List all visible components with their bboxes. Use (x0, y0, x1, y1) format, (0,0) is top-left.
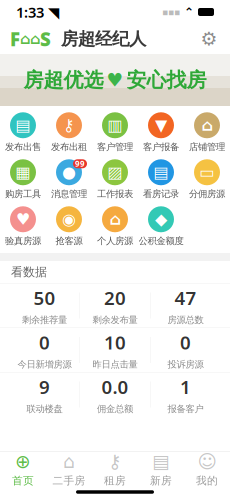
staticText: 0 (180, 330, 191, 355)
staticText: 消息管理 (51, 188, 87, 200)
staticText: 分佣房源 (189, 188, 225, 200)
button[interactable]: ◆ (138, 203, 184, 250)
staticText: ▤ (15, 116, 30, 134)
staticText: 验真房源 (5, 235, 41, 247)
staticText: 看房记录 (143, 188, 179, 200)
staticText: ⊕ (15, 451, 31, 472)
staticText: ▤ (152, 451, 170, 472)
staticText: 投诉房源 (167, 359, 203, 370)
staticText: 公积金额度 (138, 235, 183, 247)
button[interactable]: ▤ (0, 109, 46, 156)
staticText: ⌂⌂ (20, 31, 40, 47)
staticText: 抢客源 (55, 235, 82, 247)
staticText: ☺ (197, 451, 216, 472)
staticText: ▨ (107, 163, 122, 181)
staticText: 佣金总额 (97, 403, 133, 415)
staticText: 我的 (196, 474, 218, 487)
staticText: 今日新增房源 (17, 359, 71, 370)
button[interactable]: ♥ (0, 203, 46, 250)
button[interactable]: ⚷ (92, 452, 138, 486)
staticText: 剩余发布量 (92, 314, 137, 326)
button[interactable]: ⚷ (46, 109, 92, 156)
staticText: S (40, 27, 51, 51)
staticText: 报备客户 (167, 403, 203, 415)
button[interactable]: 设置 (196, 26, 222, 52)
staticText: ▭ (199, 163, 214, 181)
staticText: 二手房 (52, 474, 85, 487)
staticText: 9 (39, 374, 50, 399)
button[interactable]: ▨ (92, 156, 138, 203)
staticText: 房源总数 (167, 314, 203, 326)
button[interactable]: ▦ (0, 156, 46, 203)
staticText: 房超经纪人 (51, 28, 146, 50)
staticText: 20 (104, 285, 126, 310)
staticText: ● (62, 163, 76, 181)
staticText: 50 (33, 285, 55, 310)
staticText: 1:33 ◥ (16, 2, 59, 22)
staticText: 店铺管理 (189, 141, 225, 153)
button[interactable]: ⌂ (46, 452, 92, 486)
staticText: ▪▪▪ (162, 7, 180, 17)
button[interactable]: ▤ (138, 156, 184, 203)
staticText: 客户报备 (143, 141, 179, 153)
staticText: 99 (75, 158, 85, 169)
button[interactable]: ⌂ (92, 203, 138, 250)
button[interactable]: ● (46, 156, 92, 203)
button[interactable]: ◉ (46, 203, 92, 250)
staticText: 安心找房 (126, 68, 206, 92)
staticText: 10 (104, 330, 126, 355)
staticText: 购房工具 (5, 188, 41, 200)
staticText: 联动楼盘 (26, 403, 62, 415)
staticText: ⌂ (201, 116, 212, 134)
staticText: 租房 (104, 474, 126, 487)
staticText: ♥ (106, 69, 123, 91)
staticText: 0.0 (101, 374, 128, 399)
staticText: ▦ (15, 163, 30, 181)
staticText: ▥ (107, 116, 122, 134)
button[interactable]: ▼ (138, 109, 184, 156)
button[interactable]: ☺ (184, 452, 230, 486)
staticText: 新房 (150, 474, 172, 487)
staticText: 客户管理 (97, 141, 133, 153)
staticText: 工作报表 (97, 188, 133, 200)
staticText: 0 (39, 330, 50, 355)
button[interactable]: ▭ (184, 156, 230, 203)
staticText: 个人房源 (97, 235, 133, 247)
staticText: 发布出售 (5, 141, 41, 153)
staticText: ▼ (155, 116, 167, 134)
staticText: 房超优选 (23, 68, 103, 92)
staticText: ◉ (62, 210, 76, 228)
staticText: 发布出租 (51, 141, 87, 153)
staticText: ⌂ (63, 451, 75, 472)
staticText: 47 (174, 285, 196, 310)
staticText: ⌂ (109, 210, 120, 228)
staticText: ⚷ (108, 451, 122, 472)
staticText: ♥ (16, 210, 30, 228)
button[interactable]: ⊕ (0, 452, 46, 486)
staticText: ▤ (153, 163, 168, 181)
staticText: F (10, 27, 20, 51)
staticText: 剩余推荐量 (22, 314, 67, 326)
button[interactable]: ⌂ (184, 109, 230, 156)
staticText: ◆ (155, 210, 167, 228)
button[interactable]: ▥ (92, 109, 138, 156)
staticText: 1 (180, 374, 191, 399)
staticText: 昨日点击量 (92, 359, 137, 370)
staticText: 首页 (12, 474, 34, 487)
button[interactable]: ▤ (138, 452, 184, 486)
staticText: 看数据 (11, 265, 47, 279)
staticText: ⌃ (180, 5, 198, 19)
staticText: ⚷ (63, 116, 75, 134)
staticText: ⚙ (200, 28, 217, 50)
